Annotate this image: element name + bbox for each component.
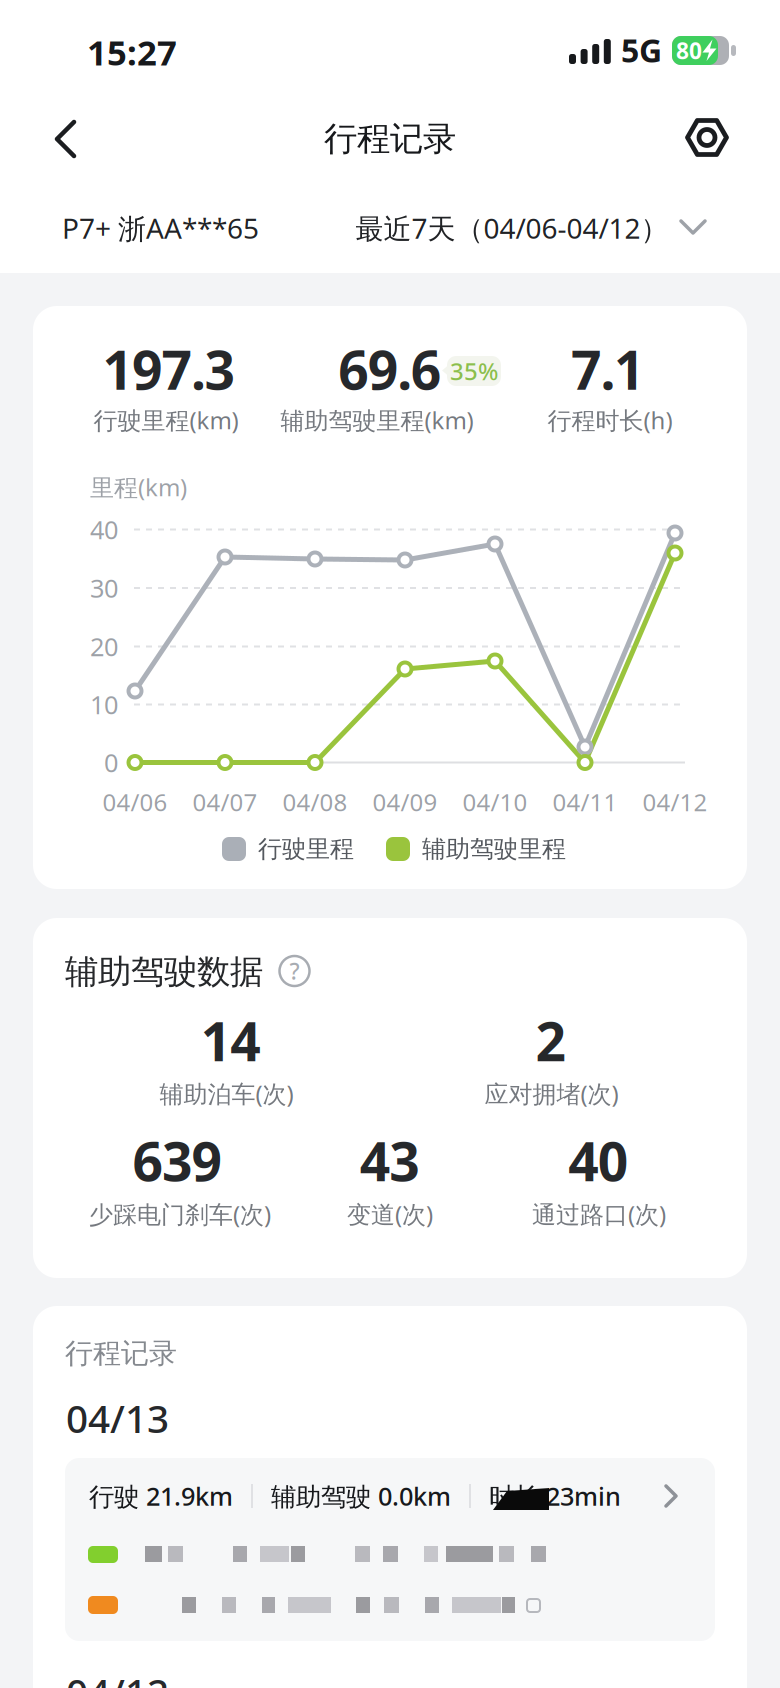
staticText: 行驶里程 <box>258 834 354 864</box>
staticText: 40 <box>90 513 118 546</box>
staticText: 行程记录 <box>65 1336 177 1371</box>
staticText: 30 <box>90 571 118 605</box>
staticText: 639 <box>132 1125 222 1196</box>
staticText: 7.1 <box>571 334 645 404</box>
button[interactable]: Settings <box>687 119 727 156</box>
staticText: 04/06 <box>102 786 167 818</box>
staticText: 04/12 <box>66 1666 169 1688</box>
staticText: ? <box>289 956 299 986</box>
button[interactable]: 行驶 21.9km <box>65 1458 715 1641</box>
staticText: 04/12 <box>642 786 707 818</box>
staticText: 69.6 <box>338 334 442 404</box>
staticText: 行程时长(h) <box>547 404 672 436</box>
staticText: 35% <box>450 355 498 387</box>
staticText: 197.3 <box>102 334 235 404</box>
staticText: 04/13 <box>66 1392 169 1444</box>
staticText: 辅助驾驶里程 <box>422 834 566 864</box>
staticText: 14 <box>201 1005 261 1076</box>
staticText: 辅助驾驶里程(km) <box>280 404 473 436</box>
staticText: 15:27 <box>87 29 177 75</box>
staticText: 辅助泊车(次) <box>159 1078 293 1109</box>
staticText: 04/07 <box>192 786 257 818</box>
staticText: 2 <box>535 1005 566 1076</box>
staticText: 应对拥堵(次) <box>484 1078 618 1109</box>
staticText: 04/11 <box>552 786 617 818</box>
button[interactable]: 最近7天（04/06-04/12） <box>342 208 722 248</box>
staticText: 04/08 <box>282 786 347 818</box>
staticText: 里程(km) <box>90 471 187 503</box>
staticText: 时长 23min <box>489 1479 621 1513</box>
staticText: 少踩电门刹车(次) <box>89 1198 271 1230</box>
button[interactable]: Back <box>32 112 120 166</box>
staticText: 20 <box>90 630 118 663</box>
button[interactable]: 说明 <box>279 956 309 986</box>
staticText: P7+ 浙AA***65 <box>62 209 259 247</box>
staticText: 43 <box>360 1125 420 1196</box>
staticText: 变道(次) <box>347 1198 433 1230</box>
staticText: 04/09 <box>372 786 437 818</box>
staticText: 80 <box>676 35 702 65</box>
staticText: 通过路口(次) <box>532 1198 666 1230</box>
staticText: 10 <box>90 688 118 721</box>
staticText: 辅助驾驶数据 <box>65 951 263 992</box>
staticText: 04/10 <box>462 786 527 818</box>
button[interactable]: P7+ 浙AA***65 <box>62 208 259 248</box>
staticText: 行驶里程(km) <box>93 404 238 436</box>
staticText: 辅助驾驶 0.0km <box>271 1479 451 1513</box>
staticText: 5G <box>621 29 662 71</box>
staticText: 0 <box>104 746 118 779</box>
staticText: 最近7天（04/06-04/12） <box>355 209 668 247</box>
staticText: 行程记录 <box>324 118 456 159</box>
staticText: 40 <box>568 1125 629 1196</box>
staticText: 行驶 21.9km <box>89 1479 233 1513</box>
